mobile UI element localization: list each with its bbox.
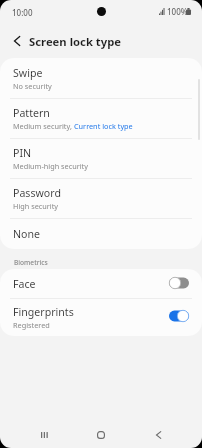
staticText: Face (13, 277, 36, 291)
staticText: Pattern (13, 106, 50, 120)
button[interactable]: None (0, 218, 202, 249)
staticText: Password (13, 186, 61, 200)
button[interactable]: Password (0, 178, 202, 218)
button[interactable]: Face (0, 269, 202, 298)
button[interactable]: Pattern (0, 98, 202, 138)
staticText: No security (13, 81, 52, 91)
staticText: Medium security, (13, 121, 74, 131)
button[interactable]: PIN (0, 138, 202, 178)
staticText: Fingerprints (13, 305, 74, 319)
staticText: PIN (13, 146, 32, 160)
button[interactable]: Disabled (169, 277, 189, 289)
staticText: High security (13, 201, 59, 211)
staticText: Screen lock type (29, 34, 122, 49)
staticText: Registered (13, 320, 50, 330)
staticText: None (13, 227, 40, 241)
staticText: Current lock type (74, 121, 133, 131)
staticText: 100% (167, 6, 188, 17)
button[interactable]: Fingerprints (0, 298, 202, 336)
staticText: Medium-high security (13, 161, 88, 171)
button[interactable]: Swipe (0, 58, 202, 98)
staticText: 10:00 (12, 7, 33, 18)
button[interactable]: Home (82, 421, 120, 448)
button[interactable]: Back (139, 421, 177, 448)
button[interactable]: Enabled (169, 310, 189, 322)
button[interactable]: Back (5, 29, 29, 53)
staticText: Biometrics (14, 258, 48, 267)
button[interactable]: Recent apps (26, 421, 63, 448)
staticText: Swipe (13, 66, 43, 80)
